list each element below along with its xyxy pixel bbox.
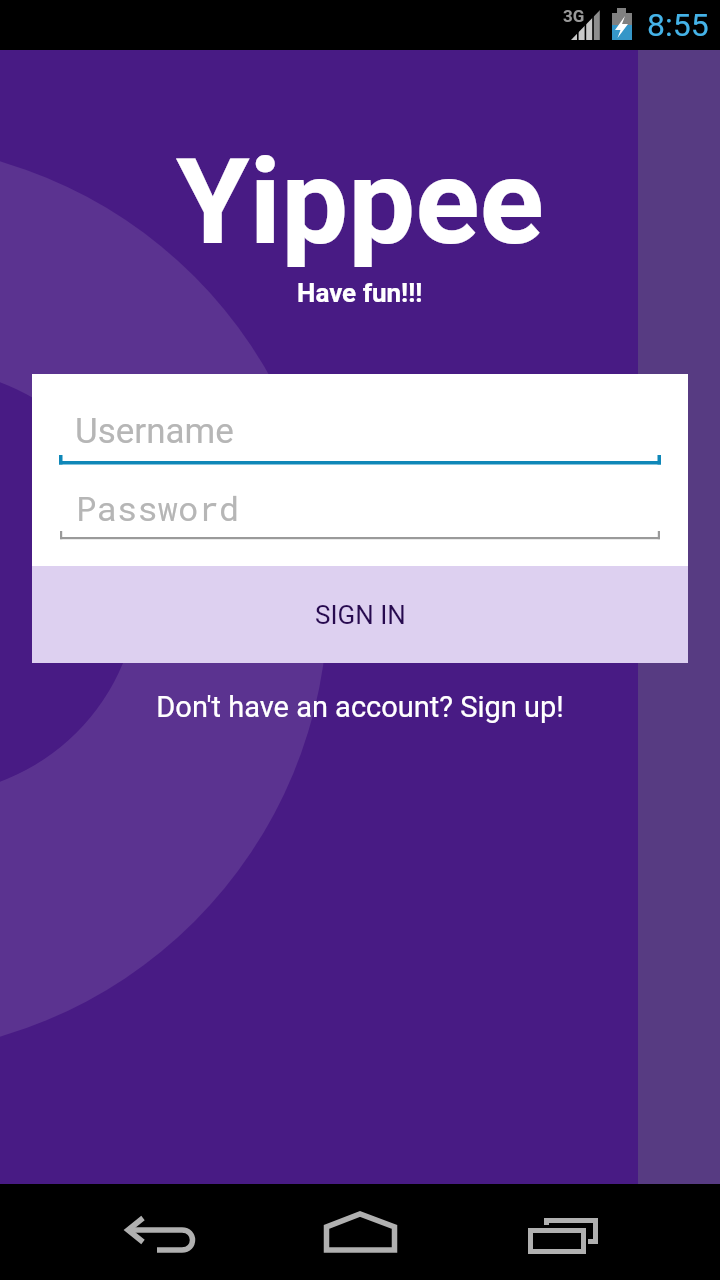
button[interactable]: Don't have an account? Sign up! [0,685,720,729]
staticText: Username [75,411,234,452]
button[interactable]: Home [300,1184,420,1280]
staticText: Yippee [176,133,544,272]
staticText: SIGN IN [315,600,406,630]
button[interactable]: Recents [500,1184,620,1280]
button[interactable]: Username [59,390,661,465]
button[interactable]: Back [100,1184,220,1280]
button[interactable]: SIGN IN [32,566,688,663]
staticText: Password [76,485,240,530]
staticText: 3G [563,6,585,26]
staticText: 8:55 [647,6,709,44]
staticText: Have fun!!! [297,278,423,308]
button[interactable]: Password [59,466,661,540]
staticText: Don't have an account? Sign up! [156,690,564,724]
